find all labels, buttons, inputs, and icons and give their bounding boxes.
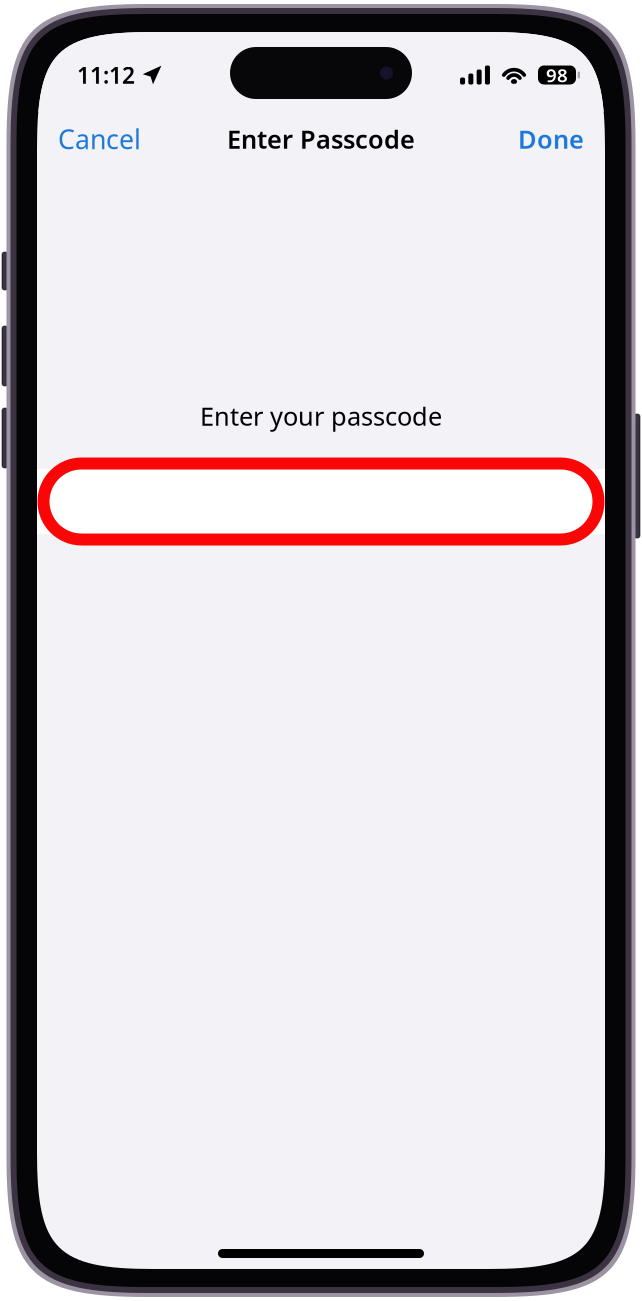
button[interactable]: Cancel bbox=[37, 112, 157, 166]
staticText: Enter Passcode bbox=[227, 122, 415, 156]
button[interactable]: Passcode bbox=[37, 469, 605, 534]
button[interactable]: Done bbox=[502, 112, 605, 166]
staticText: 98 bbox=[546, 63, 568, 87]
staticText: Done bbox=[518, 122, 584, 156]
staticText: Cancel bbox=[58, 121, 141, 157]
staticText: 11:12 bbox=[77, 60, 135, 90]
staticText: Enter your passcode bbox=[200, 399, 442, 433]
